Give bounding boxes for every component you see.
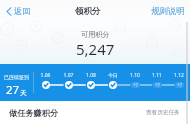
button[interactable]: +7 [124, 81, 146, 89]
staticText: 今日 [102, 72, 124, 78]
button[interactable]: +7 [146, 81, 168, 89]
staticText: 1.11 [146, 72, 168, 79]
staticText: 做任务赚积分 [9, 108, 59, 118]
button[interactable]: 返回 [0, 6, 37, 16]
staticText: 领积分 [75, 6, 101, 17]
staticText: +7 [177, 82, 183, 88]
staticText: 1.07 [57, 72, 80, 79]
staticText: 规则说明 [151, 6, 185, 17]
staticText: 1.12 [168, 72, 190, 79]
button[interactable] [34, 81, 57, 89]
button[interactable] [80, 81, 102, 89]
button[interactable] [102, 81, 124, 89]
staticText: 查看历史任务 [146, 109, 180, 116]
staticText: 5,247 [76, 39, 115, 59]
staticText: 可用积分 [81, 30, 110, 39]
staticText: 返回 [14, 6, 31, 16]
button[interactable]: 规则说明 [145, 6, 190, 17]
staticText: 1.08 [80, 72, 102, 79]
staticText: +7 [155, 82, 161, 88]
staticText: +7 [133, 82, 139, 88]
staticText: 27 [6, 82, 20, 98]
button[interactable]: 查看历史任务 [146, 109, 180, 116]
staticText: 已连续签到 [4, 74, 29, 80]
staticText: 天 [20, 89, 27, 97]
staticText: 1.06 [34, 72, 57, 79]
button[interactable]: +7 [168, 81, 190, 89]
button[interactable] [57, 81, 80, 89]
staticText: 1.10 [124, 72, 146, 79]
